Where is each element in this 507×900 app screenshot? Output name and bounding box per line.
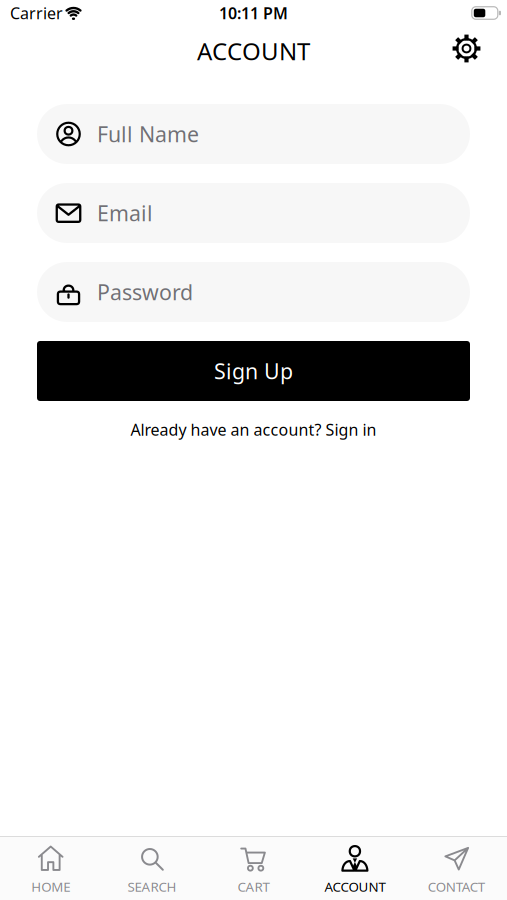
staticText: Carrier xyxy=(10,2,63,24)
button[interactable]: Sign Up xyxy=(37,341,470,401)
staticText: ACCOUNT xyxy=(324,878,385,895)
button[interactable]: CONTACT xyxy=(406,837,507,900)
button[interactable]: CART xyxy=(203,837,304,900)
staticText: Already have an account? Sign in xyxy=(130,419,376,440)
staticText: Full Name xyxy=(97,120,199,148)
staticText: Email xyxy=(97,199,153,227)
button[interactable]: Settings xyxy=(452,34,481,63)
staticText: CONTACT xyxy=(428,878,485,895)
button[interactable]: ACCOUNT xyxy=(304,837,406,900)
staticText: Password xyxy=(97,278,193,306)
staticText: SEARCH xyxy=(128,878,177,895)
staticText: 10:11 PM xyxy=(219,2,288,24)
button[interactable]: Password xyxy=(37,262,470,322)
button[interactable]: Full Name xyxy=(37,104,470,164)
staticText: ACCOUNT xyxy=(197,35,310,67)
button[interactable]: Email xyxy=(37,183,470,243)
staticText: CART xyxy=(237,878,269,895)
staticText: HOME xyxy=(31,878,70,895)
button[interactable]: SEARCH xyxy=(101,837,203,900)
staticText: Sign Up xyxy=(214,357,293,385)
button[interactable]: Already have an account? Sign in xyxy=(130,419,376,440)
button[interactable]: HOME xyxy=(0,837,101,900)
